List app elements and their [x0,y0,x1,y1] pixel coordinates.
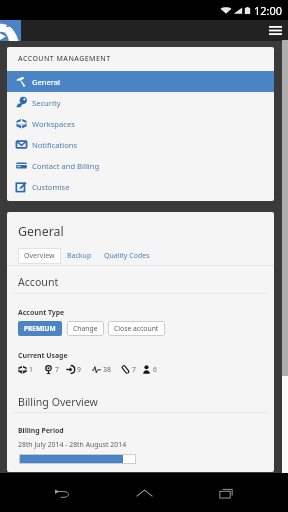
staticText: Quality Codes [104,251,150,261]
staticText: Contact and Billing [32,161,100,171]
button[interactable]: Logo home [0,20,21,41]
button[interactable]: Notifications [7,134,274,155]
staticText: Overview [24,251,55,261]
button[interactable]: Menu [262,20,288,41]
button[interactable]: Workspaces [7,113,274,134]
staticText: Billing Overview [18,395,98,409]
button[interactable]: Contact and Billing [7,155,274,176]
button[interactable]: Back [42,473,82,512]
staticText: Workspaces [32,119,75,129]
button[interactable]: Recent apps [206,473,246,512]
button[interactable]: Security [7,92,274,113]
staticText: Backup [67,251,92,261]
button[interactable]: PREMIUM [18,321,62,336]
staticText: Close account [114,324,159,333]
staticText: 7 [55,365,59,374]
staticText: 9 [77,365,81,374]
staticText: Account Type [18,308,65,317]
staticText: ACCOUNT MANAGEMENT [18,54,111,64]
button[interactable]: Customise [7,176,274,197]
staticText: Account [18,275,59,289]
staticText: PREMIUM [24,324,56,333]
staticText: 28th July 2014 - 28th August 2014 [18,440,127,449]
button[interactable]: Change [67,321,104,336]
staticText: 1 [29,365,33,374]
staticText: Customise [32,182,70,192]
staticText: 12:00 [254,3,283,18]
staticText: Billing Period [18,426,64,435]
staticText: 6 [153,365,157,374]
staticText: Notifications [32,140,78,150]
staticText: Security [32,98,61,108]
button[interactable]: General [7,71,274,92]
button[interactable]: Close account [108,321,165,336]
staticText: General [32,77,60,87]
staticText: Current Usage [18,351,68,360]
staticText: 7 [132,365,136,374]
button[interactable]: Overview [18,248,61,264]
button[interactable]: Home [124,473,164,512]
staticText: 38 [103,365,111,374]
staticText: Change [73,324,98,333]
staticText: General [18,223,64,240]
button[interactable]: Quality Codes [98,248,156,264]
button[interactable]: Backup [61,248,98,264]
